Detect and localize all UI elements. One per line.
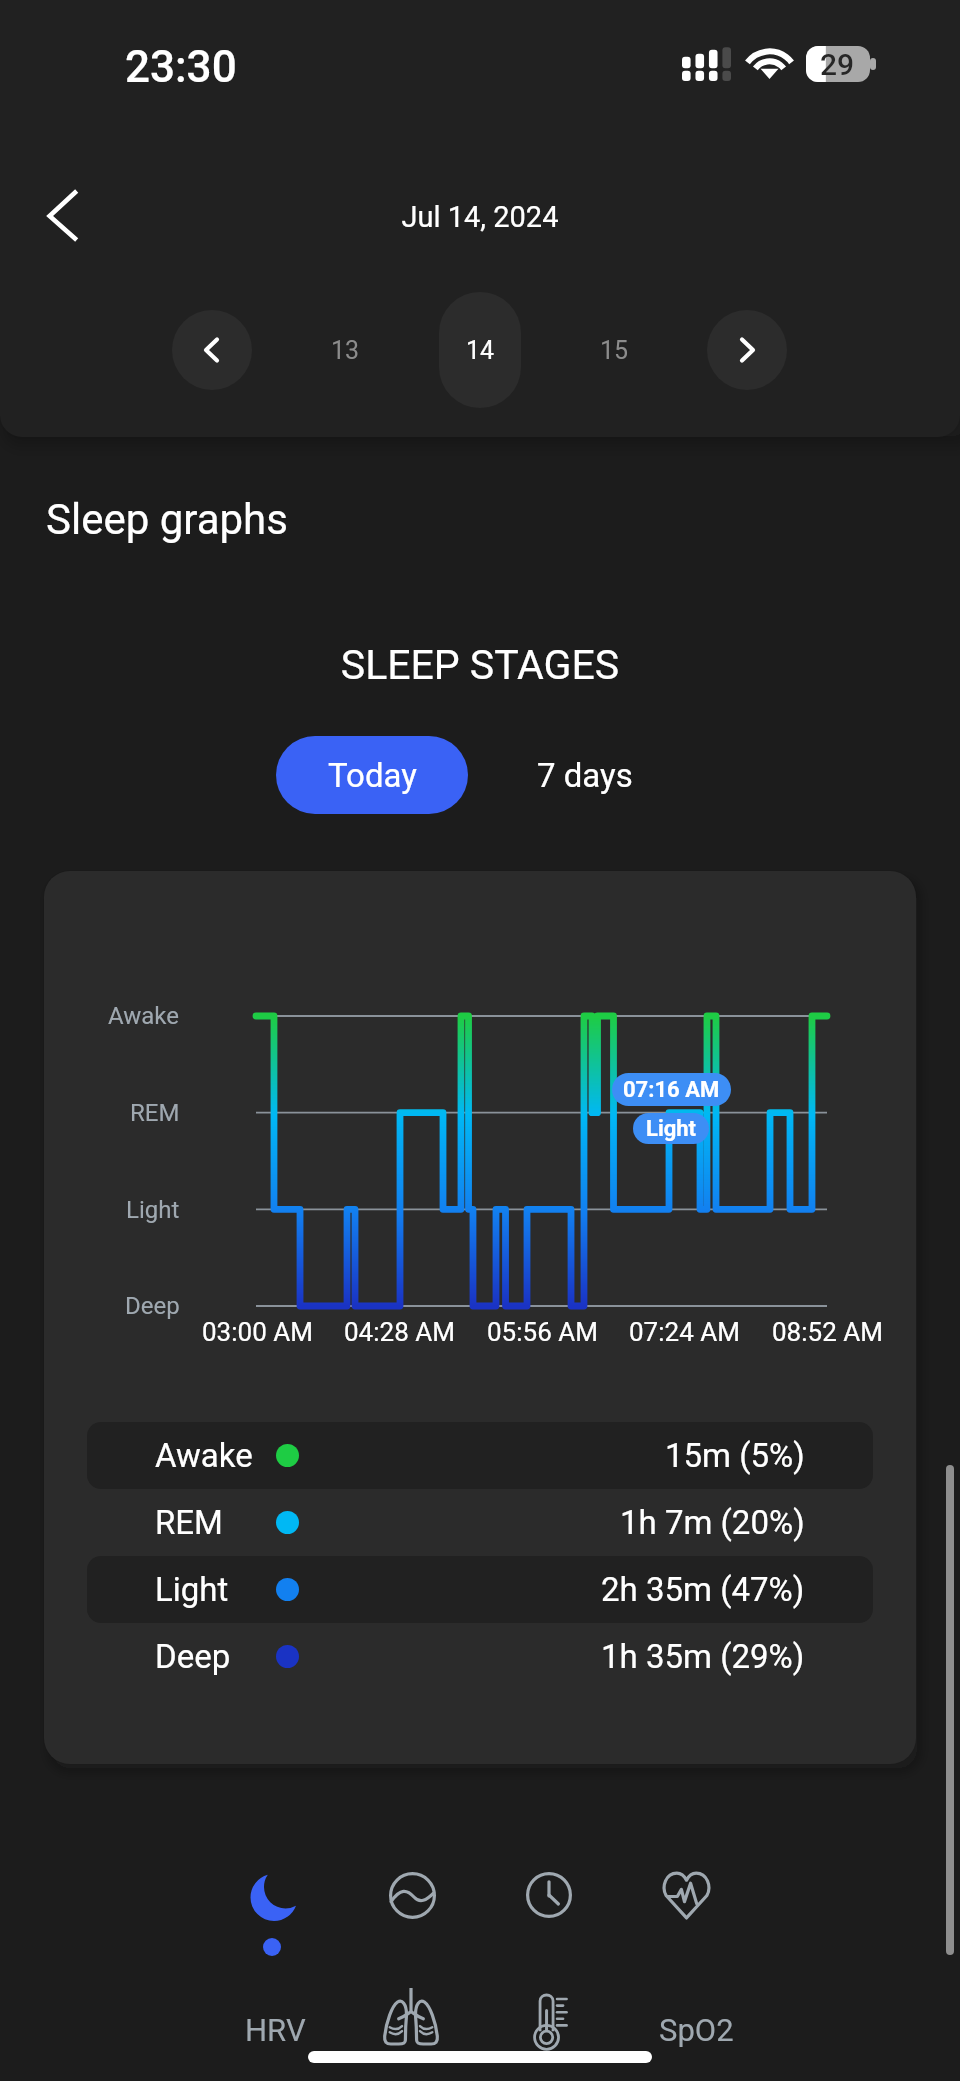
staticText: 14 (466, 336, 495, 365)
button[interactable]: Deep (87, 1623, 873, 1690)
button[interactable]: REM (87, 1489, 873, 1556)
button[interactable]: HRV (220, 2000, 330, 2060)
staticText: 04:28 AM (344, 1317, 455, 1347)
staticText: Jul 14, 2024 (0, 200, 960, 234)
staticText: 2h 35m (47%) (601, 1570, 805, 1609)
staticText: Today (328, 756, 417, 795)
staticText: 07:24 AM (629, 1317, 740, 1347)
staticText: Light (126, 1196, 180, 1224)
staticText: Deep (125, 1292, 180, 1320)
staticText: 15 (600, 336, 629, 365)
staticText: 08:52 AM (772, 1317, 883, 1347)
button[interactable]: Breathing (369, 1974, 453, 2058)
button[interactable]: Awake (87, 1422, 873, 1489)
staticText: 1h 35m (29%) (601, 1637, 805, 1676)
button[interactable]: 7 days (500, 736, 670, 814)
staticText: 07:16 AM (623, 1077, 720, 1103)
staticText: 7 days (537, 756, 633, 795)
button[interactable]: Back (26, 170, 98, 262)
staticText: 1h 7m (20%) (620, 1503, 805, 1542)
button[interactable]: Temperature (522, 1978, 586, 2068)
staticText: SLEEP STAGES (0, 641, 960, 689)
staticText: Light (155, 1570, 229, 1609)
staticText: REM (155, 1503, 223, 1542)
staticText: Awake (108, 1002, 180, 1030)
button[interactable]: 13 (305, 310, 385, 390)
button[interactable]: 15 (574, 310, 654, 390)
button[interactable]: Heart rate (647, 1856, 726, 1935)
button[interactable]: 14 (439, 292, 521, 408)
staticText: SpO2 (659, 2012, 734, 2048)
staticText: 29 (820, 47, 855, 82)
button[interactable]: Today (276, 736, 468, 814)
button[interactable]: Previous day (172, 310, 252, 390)
staticText: 05:56 AM (487, 1317, 598, 1347)
staticText: 23:30 (125, 41, 237, 93)
staticText: Deep (155, 1637, 231, 1676)
button[interactable]: Sleep (236, 1862, 312, 1958)
button[interactable]: SpO2 (636, 2000, 756, 2060)
staticText: Awake (155, 1436, 253, 1475)
staticText: 13 (331, 336, 360, 365)
button[interactable]: Next day (707, 310, 787, 390)
staticText: REM (130, 1099, 180, 1127)
button[interactable]: Light (87, 1556, 873, 1623)
button[interactable]: Readiness (375, 1858, 450, 1933)
button[interactable]: Clock (512, 1858, 586, 1932)
staticText: Light (646, 1116, 697, 1142)
staticText: 15m (5%) (665, 1436, 805, 1475)
staticText: HRV (245, 2012, 306, 2048)
staticText: 03:00 AM (202, 1317, 313, 1347)
staticText: Sleep graphs (46, 495, 288, 544)
